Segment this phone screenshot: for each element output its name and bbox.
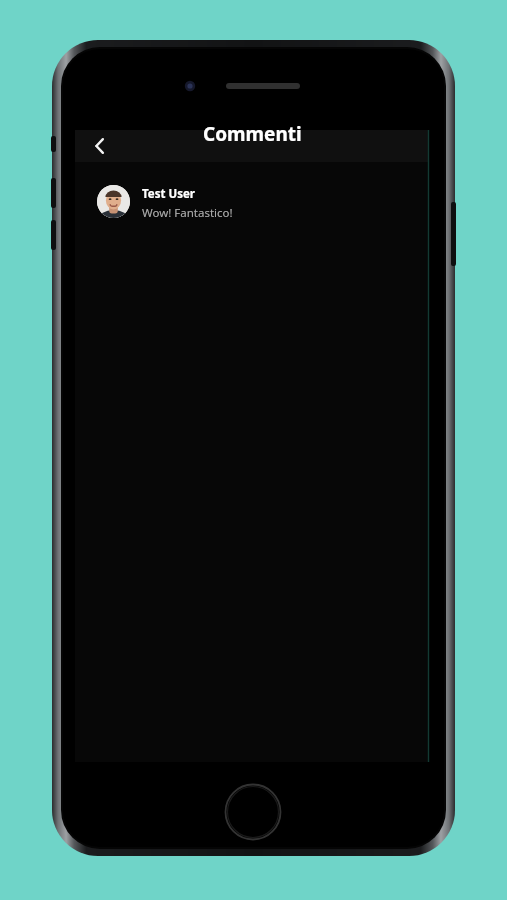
button[interactable]: Back	[83, 130, 117, 162]
staticText: Wow! Fantastico!	[142, 205, 233, 221]
button[interactable]: Test User	[75, 162, 429, 233]
staticText: Test User	[142, 186, 195, 202]
staticText: Commenti	[203, 121, 302, 147]
